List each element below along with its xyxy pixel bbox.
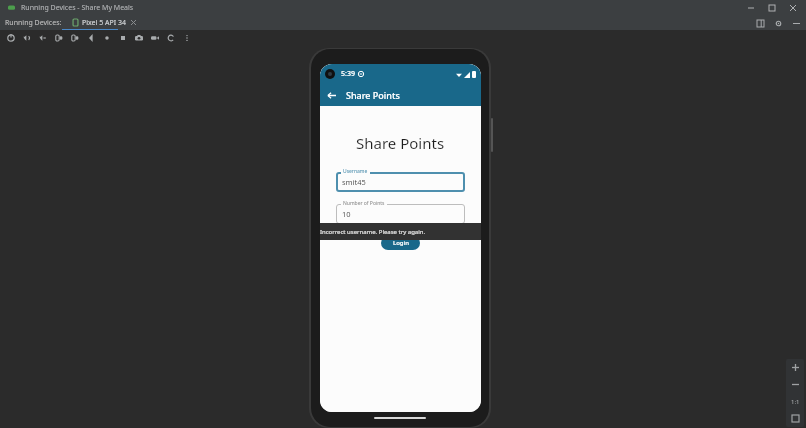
button[interactable]: Zoom out [787, 376, 804, 393]
button[interactable]: Back [320, 84, 342, 106]
button[interactable]: Hide [791, 18, 801, 28]
staticText: Pixel 5 API 34 [82, 18, 126, 28]
staticText: smit45 [342, 177, 366, 187]
button[interactable]: Home [99, 30, 115, 46]
button[interactable]: Overview [115, 30, 131, 46]
button[interactable]: Back [83, 30, 99, 46]
button[interactable]: Screenshot [131, 30, 147, 46]
staticText: Number of Points [343, 200, 385, 207]
staticText: Share Points [346, 89, 400, 101]
button[interactable]: Rotate left [51, 30, 67, 46]
button[interactable]: Volume up [19, 30, 35, 46]
staticText: 5:39 [341, 69, 355, 79]
button[interactable]: Fit to screen [787, 410, 804, 427]
button[interactable]: 10 [336, 204, 465, 224]
button[interactable]: Close [787, 2, 798, 13]
staticText: Incorrect username. Please try again. [320, 228, 426, 236]
staticText: 10 [342, 209, 351, 219]
staticText: Running Devices: [5, 18, 62, 28]
button[interactable]: Login [381, 236, 420, 250]
button[interactable]: Actual size [787, 393, 804, 410]
button[interactable]: Maximize [766, 2, 777, 13]
button[interactable]: Settings [773, 18, 783, 28]
button[interactable]: More [179, 30, 195, 46]
button[interactable]: Zoom in [787, 359, 804, 376]
button[interactable]: smit45 [336, 172, 465, 192]
button[interactable]: Power [3, 30, 19, 46]
button[interactable]: Layout [755, 18, 765, 28]
button[interactable]: Reset [163, 30, 179, 46]
staticText: Username [343, 168, 368, 175]
button[interactable]: Volume down [35, 30, 51, 46]
staticText: 1:1 [791, 398, 800, 406]
staticText: Login [393, 239, 409, 247]
button[interactable]: Record [147, 30, 163, 46]
staticText: Share Points [356, 133, 445, 153]
staticText: Running Devices - Share My Meals [21, 3, 134, 13]
button[interactable]: Rotate right [67, 30, 83, 46]
button[interactable]: Pixel 5 API 34 [72, 15, 136, 30]
button[interactable]: Minimize [745, 2, 756, 13]
